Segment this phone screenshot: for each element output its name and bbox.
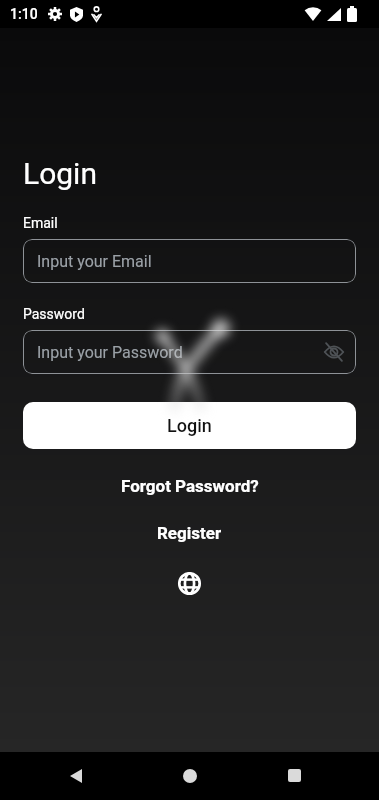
staticText: Login	[167, 415, 212, 436]
button[interactable]	[183, 769, 197, 783]
button[interactable]: Forgot Password?	[121, 476, 259, 496]
staticText: Register	[157, 523, 222, 543]
button[interactable]: Login	[23, 402, 356, 449]
button[interactable]: Input your Email	[23, 239, 356, 283]
staticText: Login	[23, 156, 97, 191]
button[interactable]	[70, 769, 82, 783]
staticText: Forgot Password?	[121, 476, 259, 496]
button[interactable]: Input your Password	[23, 330, 356, 374]
staticText: 1:10	[10, 6, 38, 22]
staticText: Password	[23, 306, 85, 322]
button[interactable]	[288, 769, 301, 782]
button[interactable]	[178, 572, 201, 595]
button[interactable]: Register	[157, 523, 222, 543]
staticText: Input your Password	[37, 343, 183, 362]
staticText: Input your Email	[37, 252, 152, 271]
staticText: Email	[23, 215, 58, 231]
